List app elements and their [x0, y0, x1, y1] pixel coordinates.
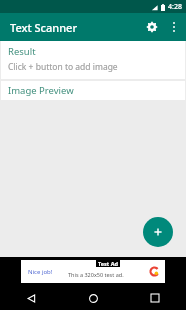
- button[interactable]: Result: [1, 41, 185, 79]
- button[interactable]: Settings: [140, 15, 164, 39]
- button[interactable]: Nice job!: [21, 260, 165, 283]
- staticText: Result: [8, 45, 36, 58]
- button[interactable]: Add image: [143, 217, 173, 247]
- staticText: This a 320x50 test ad.: [68, 271, 124, 278]
- staticText: Text Scanner: [10, 20, 78, 35]
- button[interactable]: Home: [62, 286, 124, 310]
- staticText: Image Preview: [8, 84, 74, 97]
- button[interactable]: More options: [164, 17, 184, 37]
- button[interactable]: Back: [0, 286, 62, 310]
- staticText: Test Ad: [98, 260, 118, 267]
- staticText: Click + button to add image: [8, 61, 118, 73]
- button[interactable]: Recent apps: [124, 286, 186, 310]
- staticText: 4:28: [168, 2, 182, 12]
- staticText: Nice job!: [28, 268, 53, 276]
